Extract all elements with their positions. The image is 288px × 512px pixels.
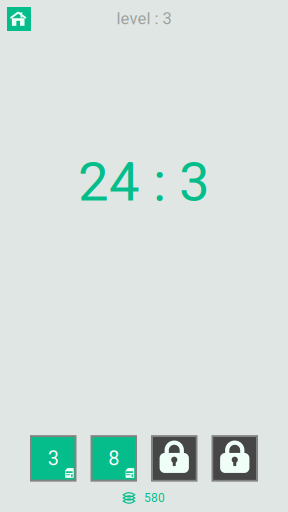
- button[interactable]: 8: [90, 435, 137, 482]
- staticText: 3: [48, 447, 59, 470]
- staticText: 580: [144, 491, 165, 505]
- button[interactable]: Locked: [211, 435, 258, 482]
- button[interactable]: Locked: [151, 435, 197, 482]
- button[interactable]: 3: [30, 435, 76, 482]
- staticText: 24 : 3: [78, 150, 210, 214]
- staticText: level : 3: [116, 9, 171, 28]
- button[interactable]: Home: [7, 7, 31, 31]
- staticText: 8: [108, 447, 119, 470]
